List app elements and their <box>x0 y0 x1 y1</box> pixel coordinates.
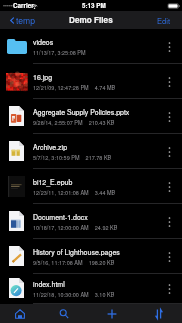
button[interactable]: More options <box>163 247 176 267</box>
button[interactable]: Document-1.docx <box>0 204 182 239</box>
button[interactable]: Search <box>53 304 75 323</box>
staticText: 10/18/17, 12:00:00 AM 24.92 KB <box>33 224 118 232</box>
button[interactable]: More options <box>163 37 176 57</box>
button[interactable]: More options <box>163 279 176 299</box>
button[interactable]: More options <box>163 142 176 162</box>
button[interactable]: bi12_E.epub <box>0 169 182 204</box>
staticText: bi12_E.epub <box>33 177 73 187</box>
button[interactable]: Edit <box>155 12 173 29</box>
button[interactable]: videos <box>0 29 182 64</box>
staticText: Document-1.docx <box>33 212 88 222</box>
button[interactable]: Sort <box>148 304 170 323</box>
staticText: 5:13 PM <box>82 1 106 10</box>
staticText: 9/28/14, 2:55:07 PM 210.43 KB <box>33 119 115 127</box>
staticText: 12/21/09, 12:47:28 PM 4.74 MB <box>33 84 116 92</box>
staticText: 11/22/18, 10:30:00 AM 3.10 KB <box>33 291 115 299</box>
button[interactable]: History of Lighthouse.pages <box>0 239 182 274</box>
button[interactable]: Home <box>9 304 31 323</box>
button[interactable]: 16.jpg <box>0 64 182 99</box>
staticText: videos <box>33 37 54 47</box>
button[interactable]: More options <box>163 107 176 127</box>
staticText: Archive.zip <box>33 142 68 152</box>
button[interactable]: More options <box>163 72 176 92</box>
staticText: temp <box>16 14 36 26</box>
staticText: Edit <box>157 15 171 26</box>
button[interactable]: Archive.zip <box>0 134 182 169</box>
button[interactable]: index.html <box>0 274 182 304</box>
staticText: 11/13/17, 3:25:08 PM <box>33 49 86 57</box>
staticText: Aggregate Supply Policies.pptx <box>33 107 130 117</box>
staticText: 9/5/16, 11:17:08 AM 198.20 KB <box>33 259 115 267</box>
button[interactable]: More options <box>163 212 176 232</box>
staticText: History of Lighthouse.pages <box>33 247 120 257</box>
button[interactable]: Aggregate Supply Policies.pptx <box>0 99 182 134</box>
staticText: index.html <box>33 279 65 289</box>
staticText: Demo Files <box>69 14 113 26</box>
staticText: Carrier <box>13 1 34 10</box>
staticText: 12/23/11, 12:01:08 AM 3.44 MB <box>33 189 116 197</box>
staticText: 5/7/12, 3:10:59 PM 217.78 KB <box>33 154 112 162</box>
button[interactable]: More options <box>163 177 176 197</box>
staticText: 16.jpg <box>33 72 53 82</box>
button[interactable]: temp <box>9 11 37 29</box>
button[interactable]: Add <box>101 304 123 323</box>
